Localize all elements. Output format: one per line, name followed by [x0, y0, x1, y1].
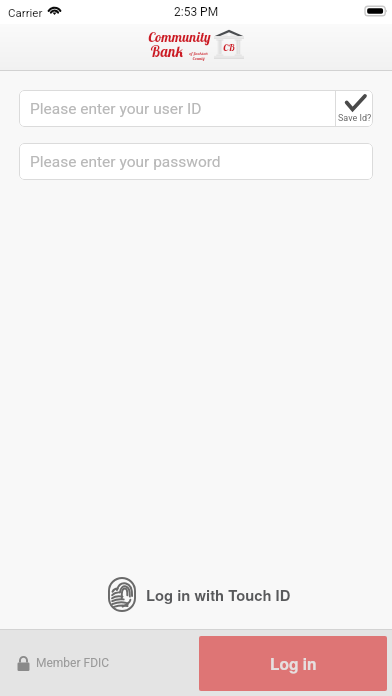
staticText: Log in: [270, 653, 317, 675]
staticText: Community: [148, 28, 211, 46]
staticText: 2:53 PM: [174, 5, 219, 19]
staticText: Please enter your password: [30, 153, 221, 171]
staticText: Member FDIC: [36, 656, 110, 670]
staticText: Please enter your user ID: [30, 100, 202, 118]
button[interactable]: Please enter your password: [19, 143, 373, 180]
button[interactable]: Log in: [199, 636, 387, 691]
button[interactable]: Log in with Touch ID: [97, 571, 296, 618]
staticText: CB: [223, 41, 235, 54]
button[interactable]: Save Id: [336, 90, 373, 127]
staticText: Bank: [150, 42, 184, 61]
staticText: Save Id?: [338, 113, 372, 124]
button[interactable]: Member FDIC: [0, 630, 199, 696]
staticText: Carrier: [8, 6, 43, 19]
button[interactable]: Please enter your user ID: [19, 90, 335, 127]
staticText: of Jackson County: [189, 50, 208, 61]
staticText: Log in with Touch ID: [146, 584, 291, 605]
